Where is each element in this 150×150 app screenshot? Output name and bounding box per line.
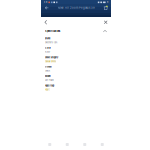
staticText: Skechers USA [45,41,57,44]
button[interactable]: Cart [103,5,108,10]
staticText: Specifications [45,30,60,32]
staticText: Navy [45,51,50,53]
button[interactable]: Tab [76,139,93,150]
button[interactable]: Tab [58,139,76,150]
button[interactable]: Specifications [45,30,107,34]
button[interactable]: Back [44,6,50,9]
staticText: Brand [45,37,50,40]
staticText: Gender [45,66,52,68]
staticText: Color [45,47,51,49]
staticText: Unisex [45,70,50,72]
button[interactable]: Tab [93,139,111,150]
button[interactable]: Close [102,18,109,26]
staticText: Model [45,75,51,77]
staticText: Lite Foam [45,79,54,81]
staticText: 91 [106,1,108,3]
staticText: Adult [45,88,50,91]
staticText: 9:41 [43,1,47,3]
button[interactable]: Back [42,18,49,26]
staticText: Casual Shoes [45,60,56,63]
staticText: Age Group [45,84,54,87]
staticText: Nike Air Zoom Pegasus 39 [58,6,95,9]
staticText: Shoe Category [45,56,58,59]
button[interactable]: Tab [41,139,58,150]
